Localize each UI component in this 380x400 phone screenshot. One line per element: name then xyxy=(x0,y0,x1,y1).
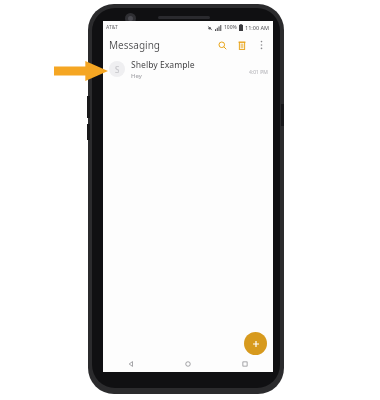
staticText: 11:00 AM xyxy=(245,24,270,31)
button[interactable]: S xyxy=(103,56,273,82)
staticText: Messaging xyxy=(109,38,160,52)
button[interactable]: Home xyxy=(159,356,216,372)
button[interactable]: Back xyxy=(103,356,159,372)
button[interactable]: Search xyxy=(213,36,231,54)
staticText: AT&T xyxy=(106,24,118,31)
staticText: 4:01 PM xyxy=(249,69,268,76)
button[interactable]: Recent apps xyxy=(216,356,273,372)
button[interactable]: New message xyxy=(244,332,267,355)
staticText: Shelby Example xyxy=(131,59,195,71)
button[interactable]: Delete xyxy=(233,36,251,54)
staticText: S xyxy=(115,64,120,75)
staticText: Hey xyxy=(131,72,142,80)
staticText: 100% xyxy=(224,24,237,31)
button[interactable]: More options xyxy=(253,37,269,53)
